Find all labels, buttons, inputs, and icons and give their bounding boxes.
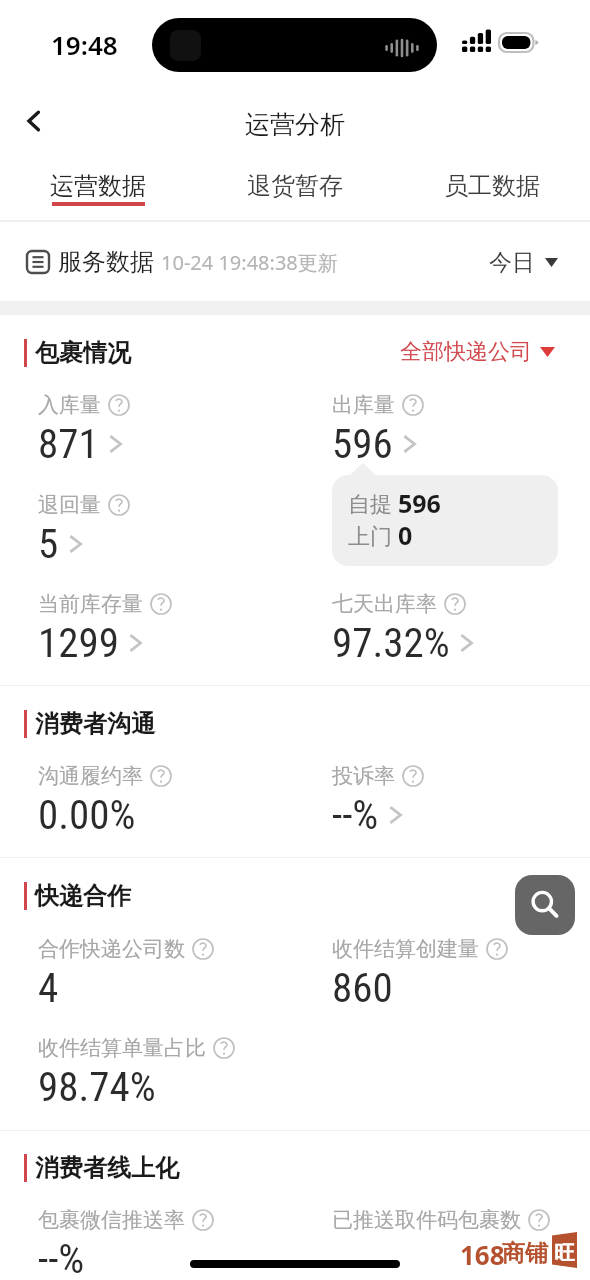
staticText: 快递合作 [35,881,131,911]
staticText: 已推送取件码包裹数 [332,1207,521,1233]
button[interactable]: 今日 [489,248,558,277]
staticText: 871 [38,420,99,468]
staticText: 19:48 [51,27,118,62]
button[interactable]: --% [38,1235,85,1280]
staticText: 运营数据 [50,171,146,201]
staticText: 出库量 [332,392,395,418]
staticText: 包裹情况 [35,338,131,368]
staticText: 0 [398,518,413,552]
staticText: 98.74% [38,1063,156,1111]
staticText: 包裹微信推送率 [38,1207,185,1233]
button[interactable]: 97.32% [332,619,475,667]
button[interactable]: --% [332,791,404,839]
staticText: 全部快递公司 [400,338,532,366]
button[interactable]: 全部快递公司 [400,338,555,366]
button[interactable]: 5 [38,520,84,568]
staticText: 服务数据 [58,247,154,277]
staticText: 退回量 [38,492,101,518]
button[interactable]: 1299 [38,619,144,667]
staticText: 旺 [554,1240,575,1266]
button[interactable]: 退货暂存 [196,155,393,202]
staticText: 今日 [489,248,535,277]
staticText: 0.00% [38,791,136,839]
staticText: 退货暂存 [247,171,343,201]
button[interactable]: 运营数据 [0,155,196,206]
staticText: 消费者沟通 [35,709,155,739]
staticText: 自提 [348,488,398,518]
staticText: 1299 [38,619,119,667]
button[interactable]: Search [515,875,575,935]
staticText: 上门 [348,520,398,550]
staticText: 沟通履约率 [38,763,143,789]
button[interactable]: 871 [38,420,124,468]
button[interactable]: 596 [332,420,418,468]
staticText: 860 [332,964,393,1012]
staticText: 596 [398,486,441,520]
staticText: 合作快递公司数 [38,936,185,962]
staticText: 运营分析 [245,109,345,140]
button[interactable]: 员工数据 [393,155,590,202]
staticText: 10-24 19:48:38更新 [161,249,338,276]
staticText: 596 [332,420,393,468]
staticText: 入库量 [38,392,101,418]
staticText: --% [332,791,379,839]
staticText: 收件结算创建量 [332,936,479,962]
button[interactable]: Back [8,95,60,147]
staticText: 97.32% [332,619,450,667]
staticText: 消费者线上化 [35,1153,179,1183]
staticText: 4 [38,964,59,1012]
button[interactable]: 98.74% [38,1063,156,1111]
staticText: 收件结算单量占比 [38,1035,206,1061]
staticText: 员工数据 [444,171,540,201]
staticText: --% [38,1235,85,1280]
staticText: 七天出库率 [332,591,437,617]
staticText: 投诉率 [332,763,395,789]
button[interactable]: 4 [38,964,59,1012]
staticText: 5 [38,520,59,568]
button[interactable]: 860 [332,964,393,1012]
staticText: 当前库存量 [38,591,143,617]
button[interactable]: 0.00% [38,791,136,839]
staticText: 商铺 [502,1239,548,1268]
staticText: 168 [460,1237,505,1272]
